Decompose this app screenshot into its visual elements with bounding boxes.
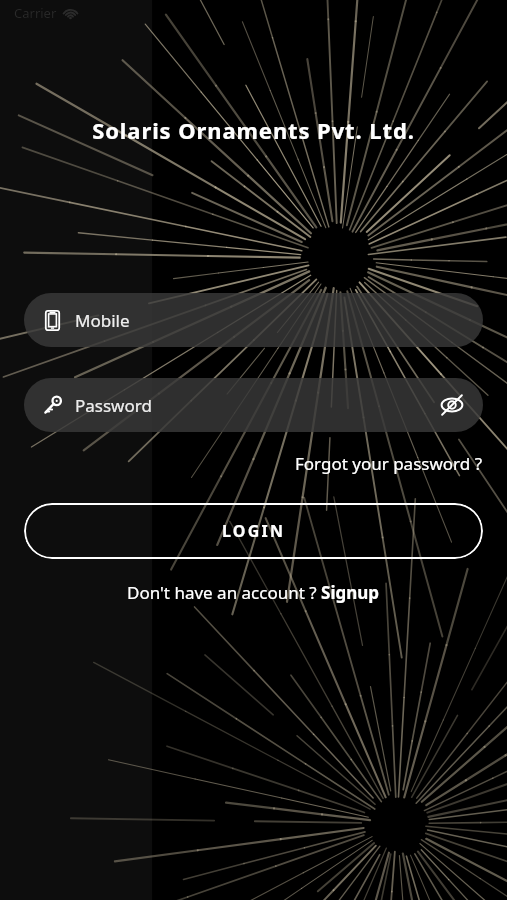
staticText: LOGIN xyxy=(222,520,286,542)
button[interactable]: Forgot your password ? xyxy=(24,452,483,475)
button[interactable]: Password xyxy=(24,378,483,432)
button[interactable]: Mobile xyxy=(24,293,483,347)
staticText: Forgot your password ? xyxy=(295,452,483,475)
button[interactable]: Don't have an account ? Signup xyxy=(24,581,483,604)
staticText: Mobile xyxy=(75,309,130,332)
staticText: Carrier xyxy=(14,4,57,22)
button[interactable]: Show password xyxy=(437,390,467,420)
staticText: Solaris Ornaments Pvt. Ltd. xyxy=(24,115,483,145)
staticText: Password xyxy=(75,394,152,417)
staticText: Don't have an account ? Signup xyxy=(127,581,380,604)
button[interactable]: LOGIN xyxy=(24,503,483,559)
